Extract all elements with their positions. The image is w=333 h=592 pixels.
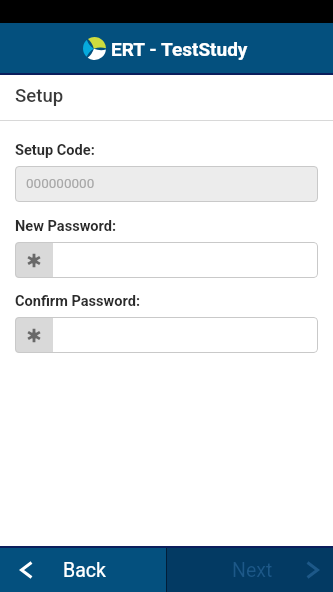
- button[interactable]: [15, 242, 318, 278]
- staticText: ERT - TestStudy: [111, 38, 248, 60]
- staticText: New Password:: [15, 217, 117, 234]
- staticText: Confirm Password:: [15, 292, 141, 309]
- staticText: Setup: [15, 85, 64, 107]
- staticText: Next: [232, 559, 273, 582]
- button[interactable]: Next: [167, 548, 333, 592]
- staticText: Back: [63, 559, 106, 582]
- staticText: Setup Code:: [15, 141, 95, 158]
- staticText: 000000000: [26, 175, 95, 191]
- button[interactable]: [15, 317, 318, 353]
- button[interactable]: 000000000: [15, 166, 318, 202]
- button[interactable]: Back: [0, 548, 166, 592]
